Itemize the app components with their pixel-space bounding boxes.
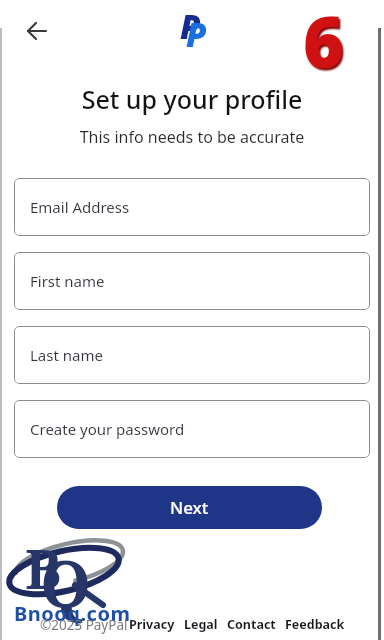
staticText: ©2023 PayPal xyxy=(40,616,128,634)
button[interactable]: Create your password xyxy=(14,400,370,458)
button[interactable]: Next xyxy=(57,486,322,529)
staticText: B xyxy=(25,531,62,605)
button[interactable] xyxy=(20,14,54,48)
staticText: Set up your profile xyxy=(0,82,384,116)
staticText: Email Address xyxy=(30,197,130,217)
staticText: Q xyxy=(40,539,92,628)
button[interactable]: Legal xyxy=(184,616,218,633)
staticText: First name xyxy=(30,271,105,291)
staticText: P xyxy=(186,12,207,57)
staticText: P xyxy=(180,4,201,49)
button[interactable]: Privacy xyxy=(129,616,175,633)
staticText: 6 xyxy=(303,0,345,88)
staticText: Create your password xyxy=(30,419,185,439)
button[interactable]: Feedback xyxy=(285,616,345,633)
button[interactable]: Last name xyxy=(14,326,370,384)
staticText: This info needs to be accurate xyxy=(0,126,384,148)
staticText: Next xyxy=(170,496,209,519)
button[interactable]: First name xyxy=(14,252,370,310)
staticText: Bnooq.com xyxy=(14,600,131,627)
staticText: Last name xyxy=(30,345,103,365)
button[interactable]: Email Address xyxy=(14,178,370,236)
button[interactable]: Contact xyxy=(227,616,276,633)
